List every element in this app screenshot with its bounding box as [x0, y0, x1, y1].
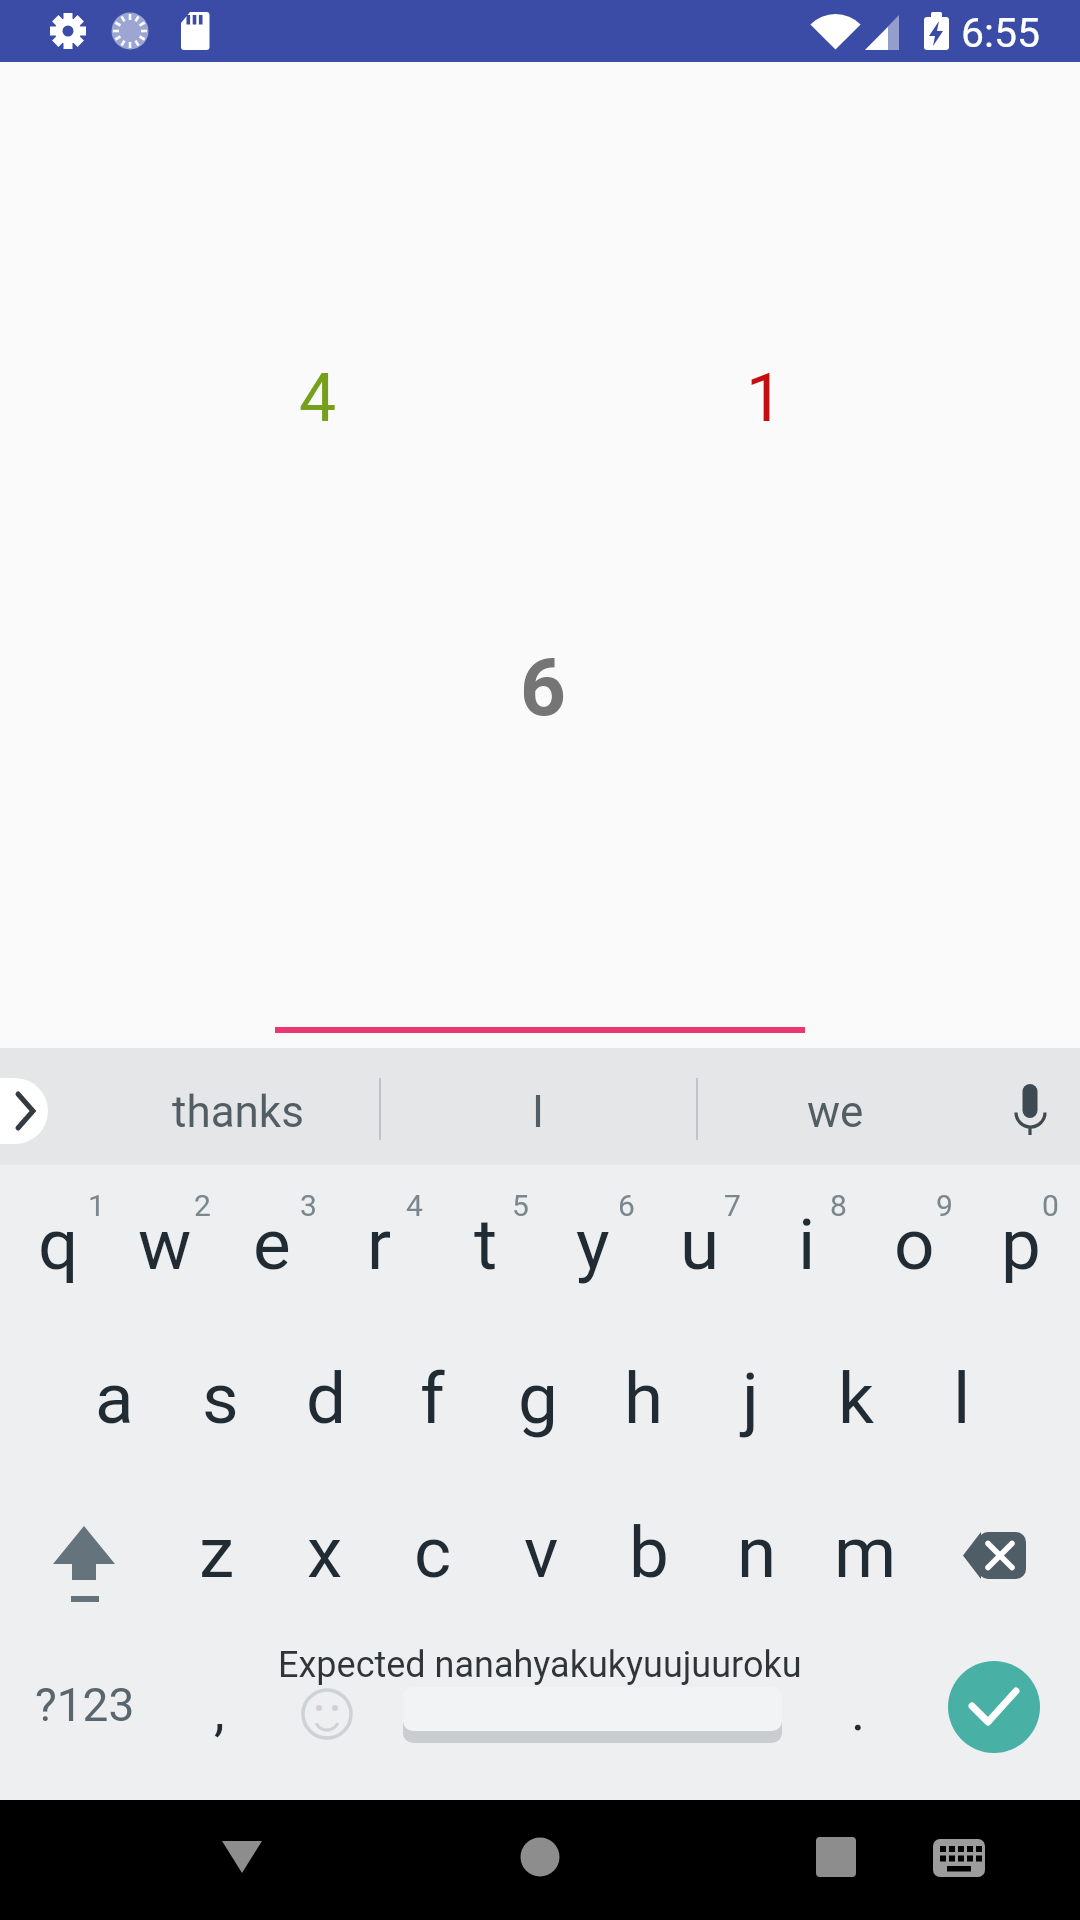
staticText: t — [474, 1203, 498, 1286]
button[interactable] — [948, 1661, 1040, 1753]
staticText: g — [518, 1357, 558, 1440]
button[interactable]: r — [326, 1169, 432, 1319]
staticText: n — [737, 1511, 777, 1594]
button[interactable]: x — [272, 1478, 378, 1626]
button[interactable] — [0, 1078, 48, 1144]
button[interactable]: p — [968, 1169, 1074, 1319]
staticText: , — [214, 1680, 225, 1743]
staticText: thanks — [172, 1086, 304, 1138]
staticText: f — [420, 1357, 445, 1440]
button[interactable]: g — [486, 1324, 590, 1472]
staticText: . — [851, 1680, 866, 1743]
staticText: we — [807, 1086, 864, 1138]
staticText: 7 — [724, 1188, 741, 1223]
staticText: x — [307, 1511, 343, 1594]
staticText: z — [199, 1511, 235, 1594]
staticText: o — [894, 1203, 935, 1286]
staticText: I — [532, 1086, 544, 1138]
staticText: c — [414, 1511, 452, 1594]
staticText: p — [1001, 1203, 1041, 1286]
button[interactable]: t — [433, 1169, 539, 1319]
button[interactable]: b — [596, 1478, 702, 1626]
button[interactable] — [392, 1639, 792, 1787]
button[interactable]: we — [700, 1056, 970, 1168]
button[interactable]: d — [274, 1324, 378, 1472]
button[interactable]: v — [488, 1478, 594, 1626]
button[interactable]: k — [804, 1324, 908, 1472]
button[interactable] — [2, 1479, 166, 1627]
staticText: u — [680, 1203, 720, 1286]
staticText: 6 — [520, 641, 566, 735]
button[interactable] — [985, 1054, 1075, 1166]
staticText: 4 — [299, 360, 337, 437]
staticText: 4 — [406, 1188, 423, 1223]
staticText: r — [367, 1203, 392, 1286]
staticText: 0 — [1042, 1188, 1059, 1223]
button[interactable]: a — [62, 1324, 166, 1472]
staticText: l — [953, 1357, 971, 1440]
button[interactable]: u — [647, 1169, 753, 1319]
staticText: 3 — [300, 1188, 317, 1223]
button[interactable] — [908, 1479, 1080, 1627]
button[interactable] — [781, 1800, 891, 1916]
staticText: v — [524, 1511, 559, 1594]
staticText: b — [629, 1511, 669, 1594]
button[interactable]: , — [174, 1637, 264, 1785]
staticText: s — [202, 1357, 239, 1440]
button[interactable]: i — [754, 1169, 860, 1319]
staticText: j — [742, 1357, 759, 1440]
button[interactable]: o — [861, 1169, 967, 1319]
staticText: i — [798, 1203, 816, 1286]
staticText: Expected nanahyakukyuujuuroku — [278, 1644, 802, 1686]
button[interactable]: y — [540, 1169, 646, 1319]
staticText: 9 — [936, 1188, 953, 1223]
button[interactable]: h — [592, 1324, 696, 1472]
button[interactable]: . — [813, 1637, 903, 1785]
button[interactable]: w — [112, 1169, 218, 1319]
staticText: m — [834, 1511, 897, 1594]
staticText: e — [253, 1203, 291, 1286]
button[interactable] — [907, 1800, 1011, 1916]
staticText: k — [838, 1357, 874, 1440]
button[interactable]: c — [380, 1478, 486, 1626]
staticText: 8 — [830, 1188, 847, 1223]
staticText: 1 — [746, 360, 784, 437]
staticText: w — [138, 1203, 192, 1286]
staticText: 6 — [618, 1188, 635, 1223]
button[interactable]: s — [168, 1324, 272, 1472]
button[interactable]: q — [5, 1169, 111, 1319]
button[interactable]: I — [383, 1056, 693, 1168]
button[interactable] — [187, 1800, 297, 1916]
button[interactable] — [275, 1640, 379, 1788]
button[interactable]: l — [910, 1324, 1014, 1472]
button[interactable]: f — [380, 1324, 484, 1472]
button[interactable]: e — [219, 1169, 325, 1319]
button[interactable]: ?123 — [10, 1631, 160, 1779]
button[interactable]: m — [812, 1478, 918, 1626]
staticText: y — [576, 1203, 610, 1286]
staticText: q — [38, 1203, 79, 1286]
staticText: d — [306, 1357, 347, 1440]
button[interactable]: j — [698, 1324, 802, 1472]
staticText: ?123 — [35, 1678, 135, 1732]
button[interactable]: z — [164, 1478, 270, 1626]
staticText: 2 — [194, 1188, 211, 1223]
staticText: 1 — [88, 1188, 105, 1223]
button[interactable]: n — [704, 1478, 810, 1626]
staticText: h — [624, 1357, 664, 1440]
button[interactable]: thanks — [96, 1056, 380, 1168]
staticText: 5 — [512, 1188, 529, 1223]
staticText: 6:55 — [961, 9, 1041, 57]
button[interactable] — [485, 1800, 595, 1916]
staticText: a — [95, 1357, 134, 1440]
